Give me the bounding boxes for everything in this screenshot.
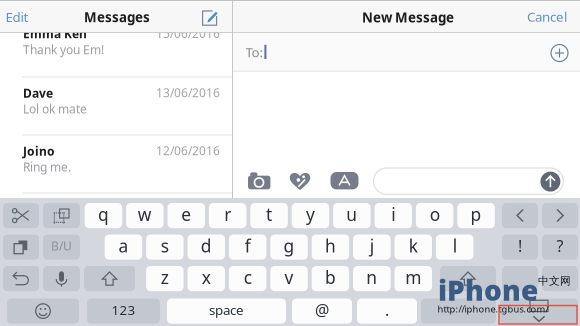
staticText: Dave [23,85,53,101]
button[interactable]: Edit [0,0,44,14]
button[interactable]: Dictate [0,0,37,25]
staticText: . [385,299,389,320]
button[interactable]: q [0,0,37,25]
button[interactable]: . [0,0,60,25]
staticText: Thank you Em! [23,42,104,57]
button[interactable]: e [0,0,37,25]
staticText: Cancel [527,8,567,25]
button[interactable]: Paste [0,0,36,25]
button[interactable]: Exclamation mark [0,0,36,25]
staticText: d [201,234,212,257]
staticText: i [391,203,395,226]
button[interactable]: App Store [0,0,28,17]
button[interactable]: j [0,0,37,25]
staticText: New Message [362,8,454,26]
button[interactable]: h [0,0,37,25]
staticText: c [244,266,252,289]
staticText: ? [556,235,563,256]
button[interactable]: i [0,0,37,25]
staticText: 15/06/2016 [156,25,220,41]
button[interactable]: Emma Ken [0,17,232,75]
button[interactable]: Camera [0,0,23,17]
button[interactable]: z [0,0,37,25]
button[interactable]: Next [0,0,36,25]
staticText: p [470,203,481,226]
staticText: u [346,203,357,226]
button[interactable]: Copy [0,0,37,25]
button[interactable]: space [0,0,119,25]
staticText: f [245,234,251,257]
staticText: Joino [23,143,55,159]
button[interactable]: Send [0,0,20,20]
staticText: Messages [84,8,150,26]
button[interactable]: Period [0,0,36,25]
staticText: 12/06/2016 [156,143,220,159]
button[interactable]: p [0,0,37,25]
button[interactable]: r [0,0,37,25]
staticText: n [366,266,377,289]
button[interactable]: y [0,0,37,25]
button[interactable]: Hide keyboard [0,0,78,25]
staticText: q [98,203,109,226]
button[interactable]: Cut [0,0,36,25]
button[interactable]: n [0,0,37,25]
staticText: 13/06/2016 [156,85,220,101]
staticText: z [161,266,169,289]
staticText: 中文网 [538,274,571,287]
button[interactable]: @ [0,0,60,25]
staticText: b [325,266,336,289]
button[interactable]: Joino [0,134,232,192]
staticText: Edit [5,8,28,26]
button[interactable]: f [0,0,37,25]
button[interactable]: t [0,0,37,25]
staticText: 123 [111,301,135,319]
button[interactable]: Cancel [0,0,60,14]
staticText: To: [245,43,263,61]
button[interactable]: b [0,0,37,25]
button[interactable]: Question mark [0,0,36,25]
button[interactable]: Add contact [0,0,17,17]
button[interactable]: l [0,0,37,25]
button[interactable]: Undo [0,0,36,25]
button[interactable]: a [0,0,37,25]
button[interactable]: Message [0,0,190,26]
staticText: v [284,266,293,289]
staticText: s [161,234,169,257]
staticText: a [118,234,128,257]
button[interactable]: Previous [0,0,36,25]
staticText: e [181,203,191,226]
button[interactable]: c [0,0,37,25]
button[interactable]: Comma [0,0,36,25]
button[interactable]: Dave [0,76,232,134]
button[interactable]: Numbers [0,0,73,25]
staticText: ! [518,235,522,256]
staticText: Ring me. [23,159,71,175]
button[interactable]: Shift [0,0,56,25]
staticText: k [409,234,418,257]
button[interactable]: Format [0,0,37,25]
staticText: Emma Ken [23,26,87,42]
button[interactable]: m [0,0,37,25]
button[interactable]: Digital Touch [0,0,22,19]
button[interactable]: Numbers [0,0,75,25]
button[interactable]: u [0,0,37,25]
button[interactable]: x [0,0,37,25]
button[interactable]: o [0,0,37,25]
button[interactable]: w [0,0,37,25]
button[interactable]: v [0,0,37,25]
button[interactable]: s [0,0,37,25]
button[interactable]: New message [0,0,20,20]
staticText: r [224,203,231,226]
button[interactable]: k [0,0,37,25]
staticText: g [284,234,295,257]
staticText: x [202,266,211,289]
staticText: o [430,203,440,226]
button[interactable]: Emoji [0,0,72,25]
staticText: y [306,203,315,226]
staticText: j [370,234,374,257]
staticText: l [453,234,457,257]
button[interactable]: d [0,0,37,25]
button[interactable]: Shift [0,0,51,25]
staticText: iPhone [438,271,538,309]
button[interactable]: g [0,0,37,25]
